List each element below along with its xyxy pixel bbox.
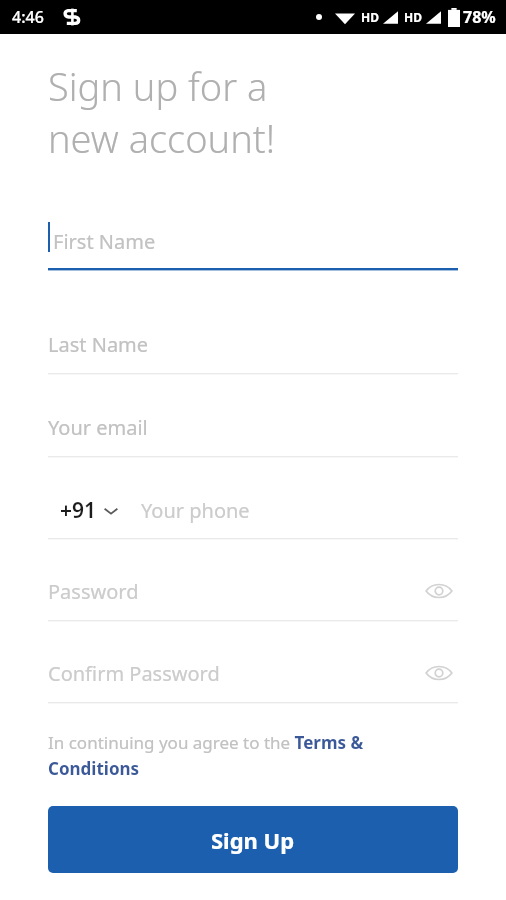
button[interactable]: First Name: [48, 222, 458, 271]
staticText: Your phone: [141, 497, 250, 524]
staticText: +91: [60, 496, 97, 525]
button[interactable]: Show confirm password: [420, 654, 458, 692]
staticText: Sign Up: [211, 825, 295, 855]
other: Select country code: [103, 505, 119, 517]
staticText: new account!: [48, 112, 276, 164]
button[interactable]: Show password: [420, 572, 458, 610]
staticText: 78%: [463, 6, 496, 28]
staticText: First Name: [53, 228, 156, 255]
staticText: Last Name: [48, 331, 149, 358]
staticText: 4:46: [12, 6, 44, 28]
staticText: HD: [404, 9, 422, 25]
button[interactable]: In continuing you agree to the Terms & C…: [48, 731, 448, 780]
button[interactable]: Sign Up: [48, 806, 458, 873]
staticText: HD: [361, 9, 379, 25]
staticText: In continuing you agree to the Terms & C…: [48, 731, 448, 780]
staticText: Sign up for a: [48, 60, 268, 112]
button[interactable]: Your email: [48, 410, 458, 459]
button[interactable]: Password: [48, 578, 139, 605]
staticText: Your email: [48, 414, 148, 441]
button[interactable]: Confirm Password: [48, 660, 220, 687]
button[interactable]: +91: [48, 496, 123, 525]
button[interactable]: Last Name: [48, 327, 458, 376]
